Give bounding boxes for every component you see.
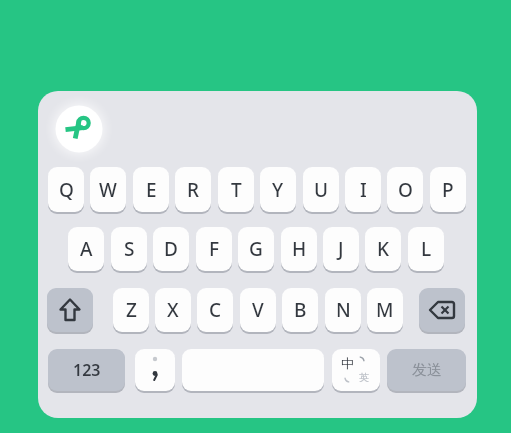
button[interactable] — [135, 349, 175, 391]
button[interactable]: A — [68, 227, 104, 271]
button[interactable]: Y — [260, 167, 296, 212]
staticText: A — [80, 236, 93, 262]
button[interactable]: J — [323, 227, 359, 271]
button[interactable]: T — [218, 167, 254, 212]
staticText: 中 — [341, 355, 354, 371]
button[interactable]: 123 — [48, 349, 125, 391]
staticText: B — [294, 297, 307, 323]
staticText: Z — [126, 297, 137, 323]
staticText: S — [124, 236, 135, 262]
button[interactable] — [182, 349, 324, 391]
button[interactable]: C — [197, 288, 233, 332]
button[interactable]: 发送 — [387, 349, 466, 391]
button[interactable]: I — [345, 167, 381, 212]
staticText: P — [442, 177, 454, 203]
button[interactable]: V — [240, 288, 276, 332]
staticText: L — [421, 236, 432, 262]
button[interactable]: N — [325, 288, 361, 332]
staticText: K — [377, 236, 390, 262]
button[interactable]: O — [387, 167, 423, 212]
staticText: J — [338, 236, 344, 262]
staticText: W — [99, 177, 117, 203]
staticText: 发送 — [412, 361, 442, 380]
staticText: I — [360, 177, 367, 203]
button[interactable]: Z — [113, 288, 149, 332]
staticText: X — [167, 297, 179, 323]
button[interactable] — [39, 89, 119, 169]
staticText: N — [336, 297, 351, 323]
button[interactable]: W — [90, 167, 126, 212]
button[interactable]: K — [365, 227, 401, 271]
button[interactable]: S — [111, 227, 147, 271]
button[interactable]: Q — [48, 167, 84, 212]
staticText: H — [292, 236, 307, 262]
button[interactable]: D — [153, 227, 189, 271]
button[interactable]: F — [196, 227, 232, 271]
button[interactable]: P — [430, 167, 466, 212]
button[interactable]: B — [282, 288, 318, 332]
staticText: M — [376, 297, 394, 323]
staticText: C — [209, 297, 222, 323]
button[interactable]: L — [408, 227, 444, 271]
button[interactable]: 中 — [332, 349, 380, 391]
staticText: Q — [59, 177, 74, 203]
button[interactable]: E — [133, 167, 169, 212]
staticText: O — [398, 177, 413, 203]
button[interactable]: R — [175, 167, 211, 212]
button[interactable] — [419, 288, 465, 332]
staticText: E — [146, 177, 157, 203]
staticText: V — [252, 297, 264, 323]
staticText: D — [164, 236, 178, 262]
button[interactable]: U — [303, 167, 339, 212]
button[interactable]: G — [238, 227, 274, 271]
button[interactable]: H — [281, 227, 317, 271]
staticText: F — [209, 236, 220, 262]
staticText: G — [249, 236, 263, 262]
staticText: R — [187, 177, 200, 203]
button[interactable]: X — [155, 288, 191, 332]
staticText: T — [231, 177, 242, 203]
staticText: U — [314, 177, 329, 203]
staticText: Y — [272, 177, 284, 203]
button[interactable] — [47, 288, 93, 332]
button[interactable]: M — [367, 288, 403, 332]
staticText: 123 — [73, 359, 101, 381]
staticText: 英 — [359, 371, 369, 384]
